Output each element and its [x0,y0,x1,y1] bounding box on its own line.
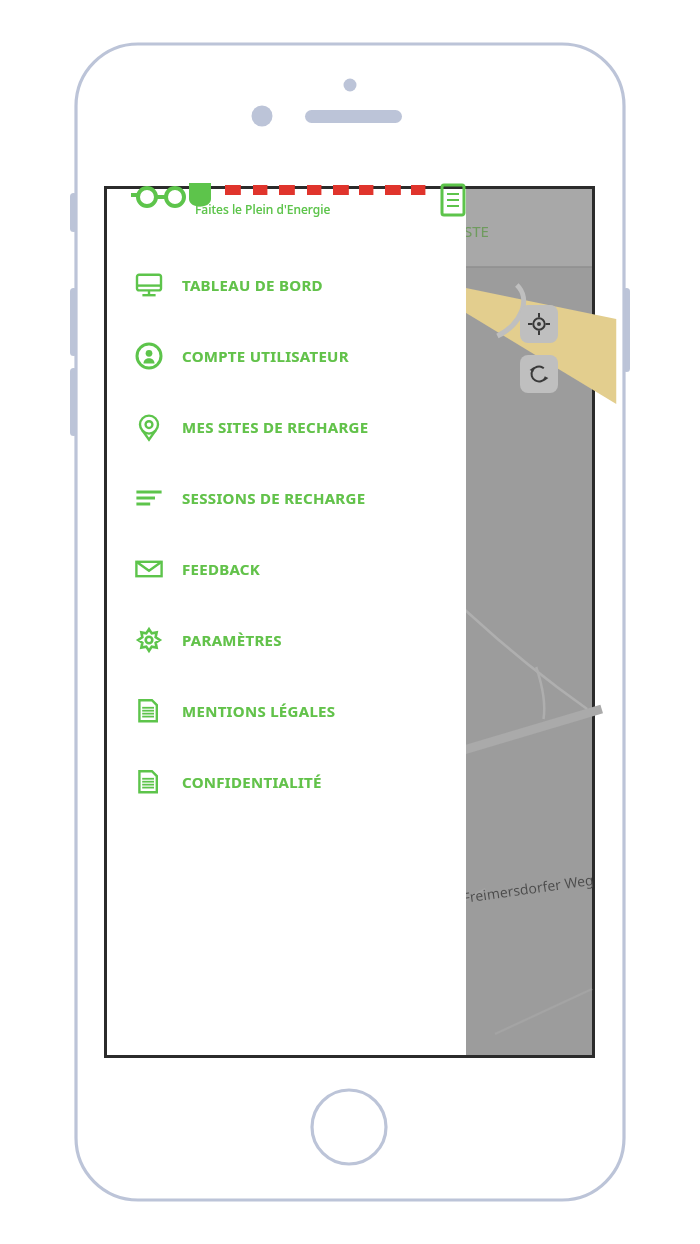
button[interactable]: FEEDBACK [107,533,466,604]
staticText: CONFIDENTIALITÉ [182,772,322,792]
staticText: Freimersdorfer Weg [461,870,595,907]
button[interactable]: TABLEAU DE BORD [107,249,466,320]
staticText: STE [464,221,489,241]
button[interactable]: COMPTE UTILISATEUR [107,320,466,391]
staticText: MES SITES DE RECHARGE [182,417,369,437]
button[interactable]: My location [520,305,558,343]
button[interactable]: MENTIONS LÉGALES [107,675,466,746]
button[interactable]: PARAMÈTRES [107,604,466,675]
staticText: SESSIONS DE RECHARGE [182,488,366,508]
staticText: MENTIONS LÉGALES [182,701,336,721]
staticText: FEEDBACK [182,559,261,579]
staticText: TABLEAU DE BORD [182,275,323,295]
button[interactable]: CONFIDENTIALITÉ [107,746,466,817]
button[interactable]: MES SITES DE RECHARGE [107,391,466,462]
button[interactable]: SESSIONS DE RECHARGE [107,462,466,533]
staticText: PARAMÈTRES [182,630,282,650]
button[interactable]: Refresh [520,355,558,393]
staticText: Faites le Plein d'Energie [195,201,331,217]
staticText: COMPTE UTILISATEUR [182,346,349,366]
